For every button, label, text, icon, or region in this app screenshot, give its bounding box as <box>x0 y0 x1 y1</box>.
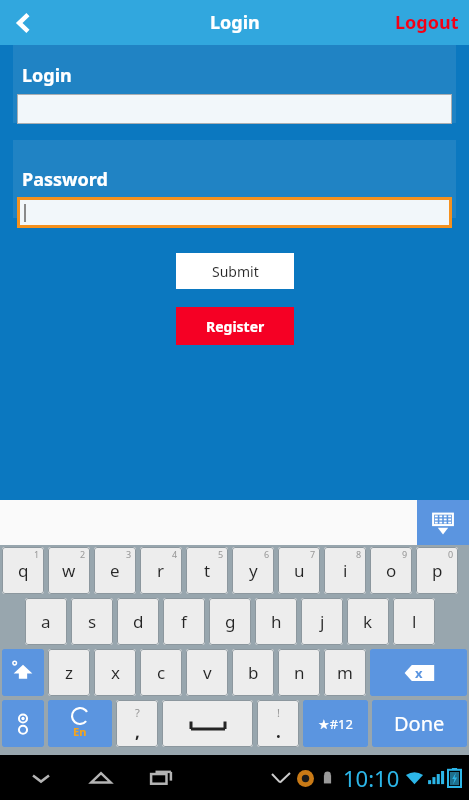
button[interactable]: En <box>48 700 112 747</box>
button[interactable]: ! <box>257 700 299 747</box>
button[interactable]: Register <box>176 307 294 345</box>
staticText: , <box>135 720 140 743</box>
staticText: n <box>294 661 305 684</box>
button[interactable]: ★#12 <box>303 700 368 747</box>
staticText: ! <box>277 705 280 720</box>
button[interactable]: w <box>48 547 90 594</box>
staticText: h <box>271 610 282 633</box>
staticText: Login <box>22 63 72 88</box>
button[interactable] <box>20 200 449 225</box>
button[interactable]: j <box>301 598 343 645</box>
button[interactable]: c <box>140 649 182 696</box>
staticText: s <box>88 610 97 633</box>
staticText: k <box>363 610 373 633</box>
staticText: Password <box>22 167 108 192</box>
button[interactable]: u <box>278 547 320 594</box>
staticText: Login <box>210 10 260 35</box>
staticText: En <box>73 724 87 739</box>
button[interactable]: b <box>232 649 274 696</box>
staticText: v <box>203 661 212 684</box>
button[interactable]: x <box>370 649 467 696</box>
staticText: ★#12 <box>318 715 353 733</box>
staticText: g <box>225 610 236 633</box>
staticText: 3 <box>126 548 132 560</box>
staticText: m <box>337 661 353 684</box>
button[interactable]: z <box>48 649 90 696</box>
staticText: t <box>204 559 211 582</box>
button[interactable]: s <box>71 598 113 645</box>
staticText: 1 <box>34 548 40 560</box>
button[interactable]: Recents <box>138 755 184 800</box>
button[interactable]: p <box>416 547 458 594</box>
button[interactable]: Back <box>18 755 64 800</box>
button[interactable]: q <box>2 547 44 594</box>
staticText: ? <box>135 705 140 720</box>
staticText: Register <box>206 317 265 336</box>
staticText: l <box>412 610 417 633</box>
button[interactable]: d <box>117 598 159 645</box>
button[interactable] <box>2 649 44 696</box>
button[interactable]: t <box>186 547 228 594</box>
staticText: Done <box>394 710 445 737</box>
button[interactable]: g <box>209 598 251 645</box>
button[interactable]: Logout <box>395 10 459 35</box>
button[interactable]: n <box>278 649 320 696</box>
button[interactable] <box>17 94 452 124</box>
staticText: i <box>343 559 348 582</box>
staticText: z <box>65 661 73 684</box>
button[interactable]: i <box>324 547 366 594</box>
staticText: c <box>157 661 166 684</box>
staticText: d <box>133 610 144 633</box>
button[interactable]: Hide keyboard <box>417 500 469 545</box>
staticText: 8 <box>356 548 362 560</box>
button[interactable]: e <box>94 547 136 594</box>
button[interactable]: m <box>324 649 366 696</box>
staticText: j <box>320 610 325 633</box>
staticText: 10:10 <box>343 763 400 793</box>
staticText: 2 <box>80 548 86 560</box>
button[interactable]: r <box>140 547 182 594</box>
button[interactable]: h <box>255 598 297 645</box>
button[interactable]: Back <box>0 0 48 45</box>
staticText: x <box>415 664 423 682</box>
staticText: 7 <box>310 548 316 560</box>
staticText: 4 <box>172 548 178 560</box>
button[interactable]: o <box>370 547 412 594</box>
staticText: r <box>157 559 165 582</box>
staticText: Logout <box>395 10 459 35</box>
staticText: x <box>111 661 120 684</box>
button[interactable]: Submit <box>176 253 294 289</box>
button[interactable] <box>162 700 253 747</box>
staticText: Submit <box>212 262 259 281</box>
staticText: q <box>18 559 29 582</box>
button[interactable]: y <box>232 547 274 594</box>
button[interactable]: f <box>163 598 205 645</box>
staticText: e <box>110 559 120 582</box>
staticText: o <box>386 559 397 582</box>
button[interactable]: Home <box>78 755 124 800</box>
staticText: 5 <box>218 548 224 560</box>
staticText: a <box>41 610 51 633</box>
button[interactable]: v <box>186 649 228 696</box>
staticText: p <box>432 559 443 582</box>
button[interactable]: ? <box>116 700 158 747</box>
button[interactable]: x <box>94 649 136 696</box>
staticText: w <box>62 559 76 582</box>
button[interactable]: a <box>25 598 67 645</box>
staticText: 9 <box>402 548 408 560</box>
button[interactable] <box>2 700 44 747</box>
staticText: b <box>248 661 259 684</box>
button[interactable]: Done <box>372 700 467 747</box>
staticText: u <box>294 559 305 582</box>
staticText: . <box>276 720 281 743</box>
staticText: f <box>181 610 187 633</box>
staticText: 6 <box>264 548 270 560</box>
button[interactable]: l <box>393 598 435 645</box>
button[interactable]: k <box>347 598 389 645</box>
staticText: y <box>249 559 258 582</box>
staticText: 0 <box>448 548 454 560</box>
